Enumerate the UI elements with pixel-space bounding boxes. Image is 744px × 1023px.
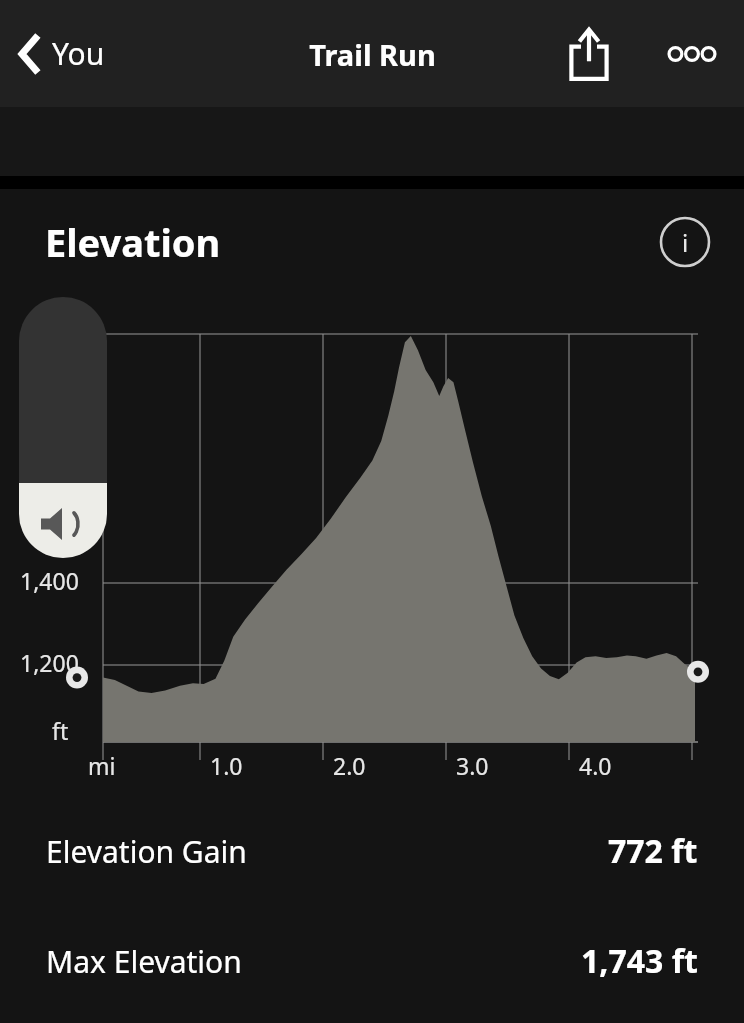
staticText: Elevation Gain <box>46 831 247 872</box>
button[interactable]: Information about elevation <box>658 215 712 269</box>
button[interactable]: More options <box>660 23 724 85</box>
staticText: 1.0 <box>210 750 243 781</box>
staticText: 772 ft <box>608 829 698 873</box>
staticText: 3.0 <box>456 750 489 781</box>
staticText: 4.0 <box>579 750 612 781</box>
staticText: 1,400 <box>20 565 79 596</box>
staticText: Elevation <box>45 216 221 268</box>
button[interactable]: Share <box>558 23 620 85</box>
staticText: Trail Run <box>309 35 436 74</box>
button[interactable]: Max Elevation <box>0 939 744 983</box>
staticText: 1,743 ft <box>581 939 698 983</box>
staticText: ft <box>52 715 69 746</box>
staticText: Max Elevation <box>46 941 242 982</box>
staticText: mi <box>88 750 116 781</box>
button[interactable]: You <box>14 27 109 80</box>
staticText: 1,200 <box>20 647 79 678</box>
staticText: You <box>52 33 105 74</box>
staticText: i <box>682 226 689 259</box>
button[interactable]: Elevation Gain <box>0 829 744 873</box>
staticText: 2.0 <box>333 750 366 781</box>
